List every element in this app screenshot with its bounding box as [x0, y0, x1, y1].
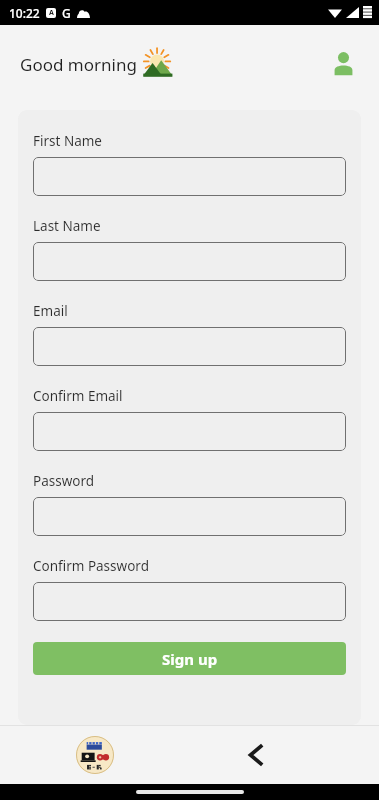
button[interactable]: Sign up [33, 642, 346, 675]
staticText: Last Name [33, 217, 101, 235]
staticText: A [49, 8, 54, 18]
staticText: Confirm Email [33, 387, 123, 405]
button[interactable] [33, 242, 346, 281]
button[interactable] [33, 497, 346, 536]
button[interactable] [33, 157, 346, 196]
staticText: Password [33, 472, 95, 490]
button[interactable] [33, 412, 346, 451]
button[interactable] [33, 582, 346, 621]
staticText: Good morning [20, 53, 137, 76]
staticText: Confirm Password [33, 557, 149, 575]
staticText: 10:22 [9, 5, 40, 21]
button[interactable]: Back [234, 733, 278, 777]
button[interactable]: Home [73, 733, 117, 777]
staticText: G [62, 5, 71, 21]
button[interactable]: Profile [323, 44, 363, 84]
button[interactable] [33, 327, 346, 366]
staticText: Sign up [162, 649, 218, 669]
staticText: First Name [33, 132, 102, 150]
staticText: Email [33, 302, 68, 320]
